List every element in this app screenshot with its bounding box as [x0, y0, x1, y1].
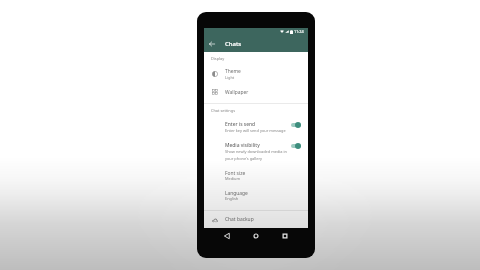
staticText: Chat settings — [211, 108, 235, 113]
staticText: Medium — [225, 176, 241, 181]
button[interactable]: Toggle — [291, 122, 301, 128]
staticText: Enter key will send your message — [225, 128, 286, 133]
staticText: 11:24 — [294, 29, 304, 34]
button[interactable]: Chat backup — [204, 211, 308, 228]
button[interactable]: Back — [204, 36, 220, 52]
button[interactable]: Toggle — [291, 143, 301, 149]
button[interactable]: Back — [219, 228, 235, 244]
button[interactable]: Media visibility — [204, 137, 308, 165]
staticText: Chat backup — [225, 216, 254, 223]
staticText: Wallpaper — [225, 89, 249, 96]
button[interactable]: Font size — [204, 165, 308, 186]
button[interactable]: Theme — [204, 64, 308, 83]
staticText: Chats — [225, 40, 242, 48]
staticText: Display — [211, 56, 225, 61]
staticText: Media visibility — [225, 142, 260, 149]
staticText: English — [225, 196, 239, 201]
button[interactable]: Wallpaper — [204, 83, 308, 101]
staticText: Show newly downloaded media in your phon… — [225, 149, 287, 161]
staticText: Language — [225, 190, 248, 197]
button[interactable]: Home — [248, 228, 264, 244]
button[interactable]: Enter is send — [204, 117, 308, 137]
button[interactable]: Language — [204, 186, 308, 206]
staticText: Theme — [225, 68, 241, 75]
button[interactable]: Recent apps — [277, 228, 293, 244]
staticText: Light — [225, 75, 235, 80]
staticText: Font size — [225, 170, 246, 177]
staticText: Enter is send — [225, 121, 256, 128]
